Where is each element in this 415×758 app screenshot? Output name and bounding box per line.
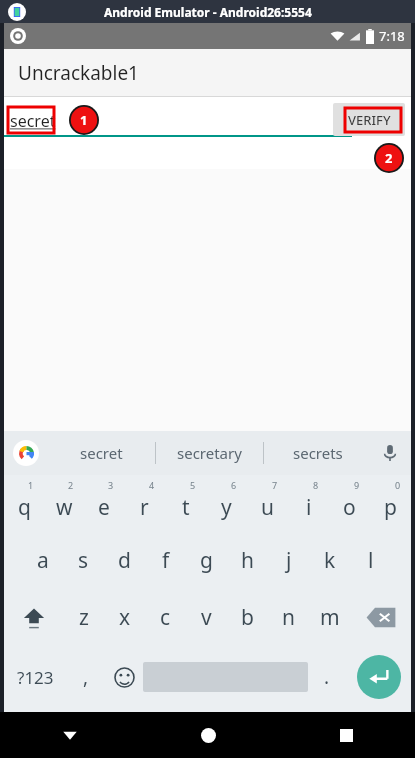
button[interactable]: 8 [288, 475, 329, 532]
staticText: 0 [395, 479, 401, 491]
button[interactable]: x [104, 589, 145, 646]
button[interactable]: k [309, 532, 350, 589]
button[interactable]: Backspace [350, 589, 411, 646]
button[interactable]: f [145, 532, 186, 589]
button[interactable]: l [350, 532, 391, 589]
staticText: . [324, 664, 330, 690]
button[interactable]: 4 [124, 475, 165, 532]
button[interactable]: Enter [346, 646, 411, 708]
button[interactable]: Home [139, 712, 277, 758]
staticText: e [98, 493, 110, 522]
staticText: y [221, 493, 232, 522]
button[interactable]: g [186, 532, 227, 589]
button[interactable]: z [64, 589, 104, 646]
staticText: j [286, 546, 292, 575]
staticText: 3 [108, 479, 114, 491]
button[interactable]: b [227, 589, 268, 646]
staticText: h [241, 546, 254, 575]
staticText: r [140, 493, 149, 522]
staticText: 2 [68, 479, 74, 491]
button[interactable]: Recents [277, 712, 415, 758]
staticText: z [79, 603, 89, 632]
button[interactable]: Google [13, 440, 39, 466]
staticText: m [320, 603, 340, 632]
staticText: 1 [80, 111, 88, 129]
staticText: d [118, 546, 131, 575]
staticText: b [241, 603, 254, 632]
button[interactable]: . [308, 646, 346, 708]
staticText: c [160, 603, 171, 632]
button[interactable]: h [227, 532, 268, 589]
staticText: Uncrackable1 [18, 60, 139, 86]
staticText: v [201, 603, 212, 632]
staticText: secret [10, 110, 56, 132]
staticText: Android Emulator - Android26:5554 [104, 4, 312, 20]
staticText: 2 [385, 149, 393, 167]
button[interactable]: , [66, 646, 105, 708]
button[interactable]: 7 [247, 475, 288, 532]
staticText: o [343, 493, 356, 522]
button[interactable]: a [23, 532, 63, 589]
staticText: x [119, 603, 131, 632]
staticText: 4 [149, 479, 155, 491]
button[interactable]: VERIFY [333, 103, 405, 136]
staticText: p [384, 493, 397, 522]
staticText: VERIFY [348, 111, 391, 129]
staticText: t [182, 493, 190, 522]
staticText: ?123 [17, 666, 54, 689]
staticText: u [261, 493, 274, 522]
button[interactable]: 3 [84, 475, 124, 532]
staticText: secrets [293, 443, 343, 463]
button[interactable]: 0 [370, 475, 411, 532]
staticText: 1 [28, 479, 34, 491]
staticText: s [78, 546, 89, 575]
staticText: a [37, 546, 49, 575]
staticText: k [324, 546, 336, 575]
button[interactable]: secretary [156, 431, 263, 475]
staticText: 7:18 [379, 27, 405, 45]
staticText: 7 [272, 479, 278, 491]
staticText: l [368, 546, 374, 575]
staticText: 6 [231, 479, 237, 491]
staticText: 8 [313, 479, 319, 491]
button[interactable]: v [186, 589, 227, 646]
button[interactable]: 5 [165, 475, 206, 532]
button[interactable]: secret [48, 431, 155, 475]
button[interactable]: 6 [206, 475, 247, 532]
button[interactable]: d [104, 532, 145, 589]
staticText: secret [80, 443, 123, 463]
button[interactable]: Voice input [381, 444, 399, 462]
staticText: secretary [177, 443, 242, 463]
button[interactable]: n [268, 589, 309, 646]
staticText: n [282, 603, 295, 632]
button[interactable]: Emoji [105, 646, 143, 708]
button[interactable]: Shift [4, 589, 64, 646]
button[interactable]: s [63, 532, 104, 589]
button[interactable]: m [309, 589, 350, 646]
staticText: f [162, 546, 170, 575]
button[interactable]: secret [4, 105, 352, 137]
staticText: w [56, 493, 73, 522]
staticText: g [200, 546, 213, 575]
button[interactable]: secrets [264, 431, 371, 475]
button[interactable]: Back [0, 712, 139, 758]
staticText: i [306, 493, 312, 522]
button[interactable]: 1 [4, 475, 44, 532]
staticText: , [83, 664, 89, 690]
button[interactable]: 9 [329, 475, 370, 532]
staticText: 9 [354, 479, 360, 491]
button[interactable]: ?123 [4, 646, 66, 708]
staticText: 5 [190, 479, 196, 491]
button[interactable]: j [268, 532, 309, 589]
button[interactable]: c [145, 589, 186, 646]
staticText: q [18, 493, 31, 522]
button[interactable]: 2 [44, 475, 84, 532]
